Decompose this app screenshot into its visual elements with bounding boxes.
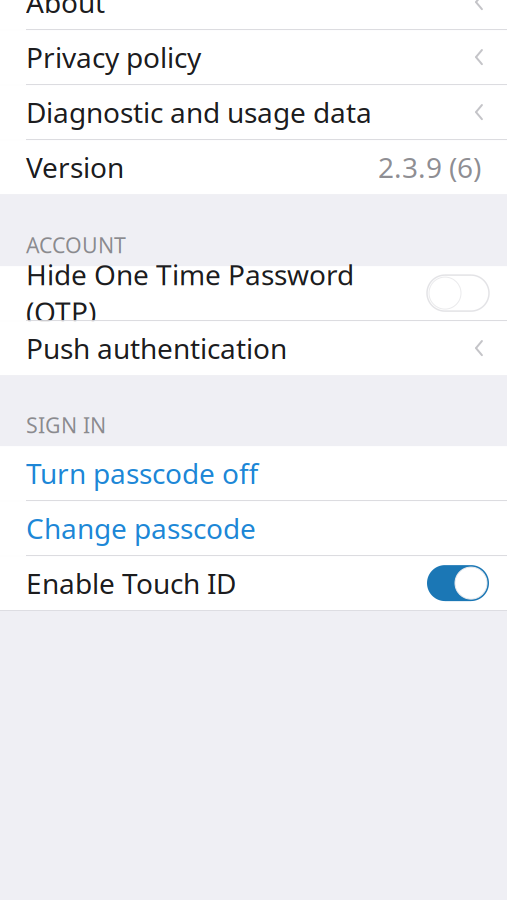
staticText: Hide One Time Password (OTP) — [26, 256, 354, 330]
staticText: Privacy policy — [26, 38, 201, 76]
staticText: Push authentication — [26, 329, 287, 367]
button[interactable]: Turn passcode off — [0, 446, 507, 500]
staticText: Version — [26, 148, 124, 186]
staticText: Change passcode — [26, 509, 256, 547]
staticText: About — [26, 0, 105, 21]
button[interactable]: Push authentication — [0, 321, 507, 375]
button[interactable]: About — [0, 0, 507, 29]
button[interactable]: Privacy policy — [0, 30, 507, 84]
staticText: Enable Touch ID — [26, 564, 236, 602]
staticText: Turn passcode off — [26, 454, 258, 492]
staticText: Diagnostic and usage data — [26, 93, 372, 131]
staticText: ACCOUNT — [26, 231, 126, 259]
button[interactable]: Change passcode — [0, 501, 507, 555]
button[interactable]: Enable Touch ID — [427, 565, 489, 601]
staticText: SIGN IN — [26, 411, 106, 439]
button[interactable]: Hide One Time Password (OTP) — [427, 275, 489, 311]
staticText: 2.3.9 (6) — [378, 148, 481, 186]
button[interactable]: Diagnostic and usage data — [0, 85, 507, 139]
